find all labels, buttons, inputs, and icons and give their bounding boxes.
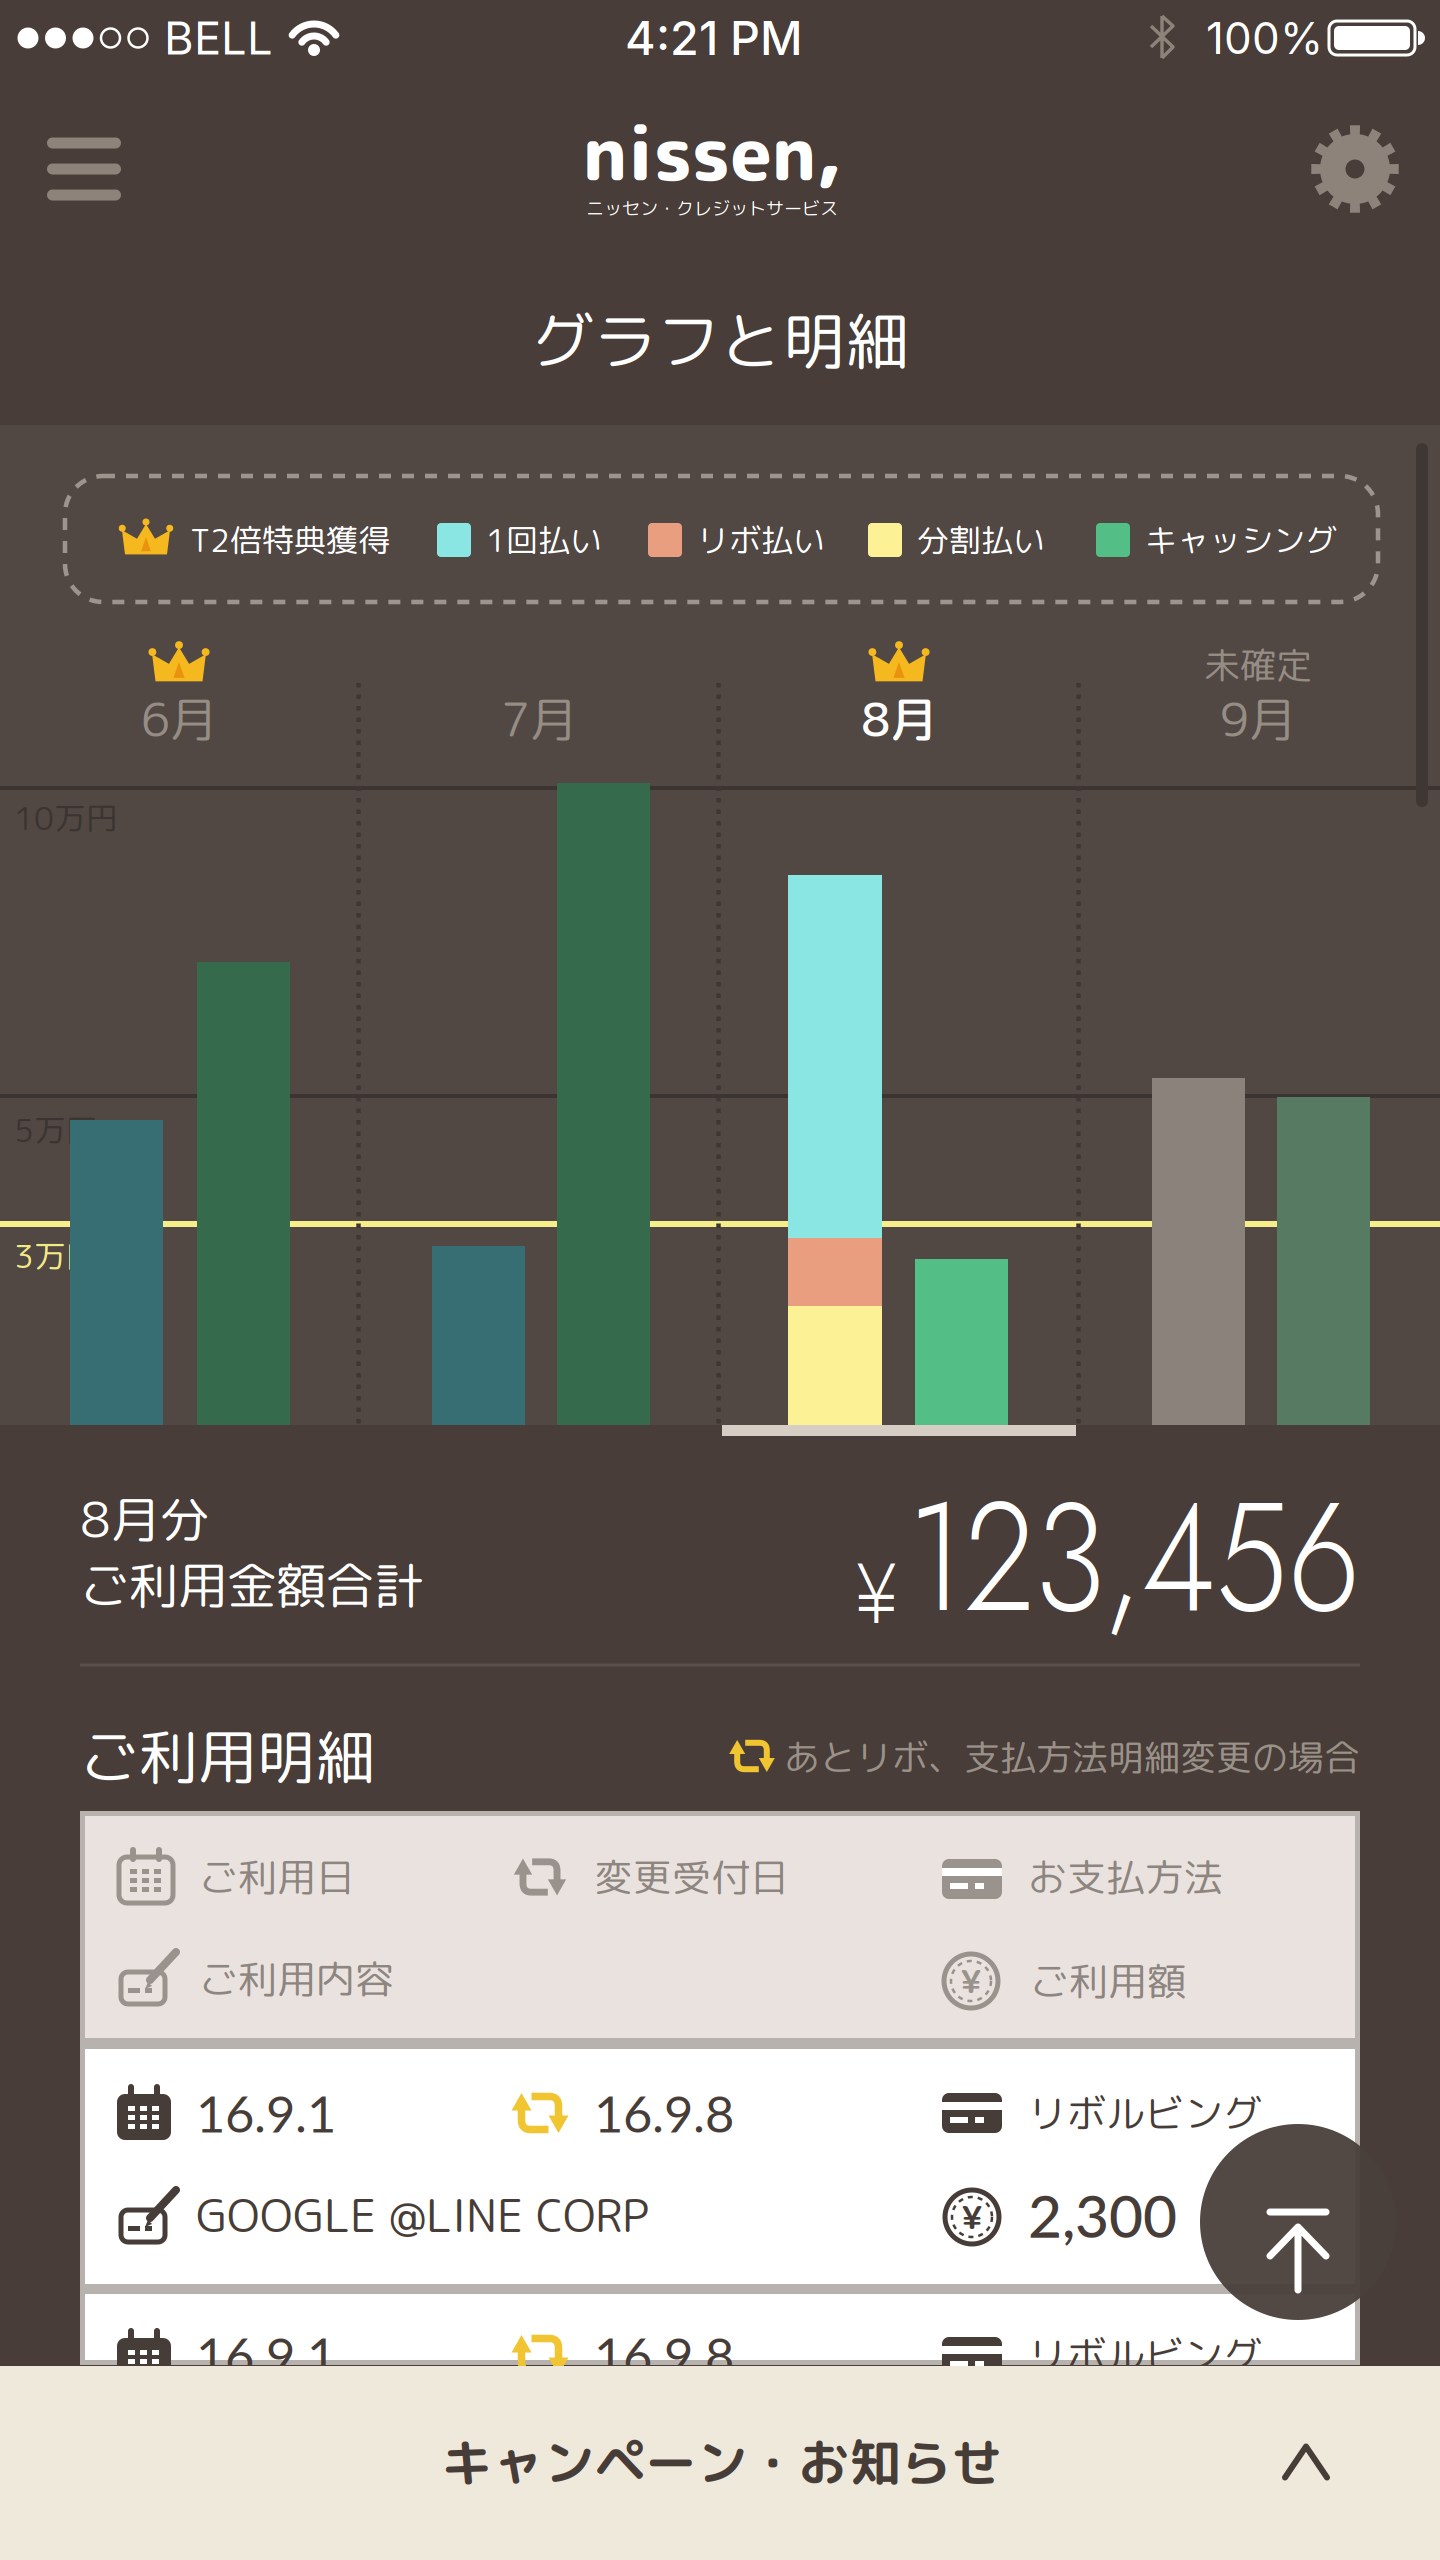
staticText: リボルビング [1028, 2328, 1262, 2382]
staticText: 分割払い [917, 518, 1045, 562]
staticText: キャッシング [1145, 518, 1337, 562]
staticText: キャンペーン・お知らせ [441, 2427, 1002, 2497]
staticText: 7月 [501, 686, 577, 751]
staticText: ご利用内容 [199, 1952, 394, 2006]
staticText: リボルビング [1028, 2086, 1262, 2140]
staticText: ¥ [960, 1959, 981, 2003]
staticText: リボ払い [697, 518, 825, 562]
staticText: 4:21 PM [625, 10, 803, 66]
staticText: ご利用額 [1030, 1954, 1186, 2008]
staticText: 1回払い [486, 518, 602, 562]
button[interactable]: キャンペーン・お知らせ [0, 2366, 1440, 2560]
staticText: ご利用明細 [80, 1715, 375, 1797]
staticText: ¥ [961, 2195, 982, 2239]
staticText: 6月 [141, 686, 217, 751]
staticText: ご利用日 [199, 1850, 355, 1904]
staticText: あとリボ、支払方法明細変更の場合 [784, 1732, 1360, 1782]
staticText: お支払方法 [1028, 1850, 1223, 1904]
staticText: 123,456 [828, 1447, 1360, 1667]
button[interactable]: Settings [1309, 123, 1401, 215]
button[interactable]: Menu [47, 137, 121, 200]
staticText: 16.9.1 [196, 2325, 336, 2385]
staticText: T2倍特典獲得 [190, 518, 390, 562]
button[interactable]: Scroll to top [1200, 2124, 1396, 2320]
staticText: 9月 [1220, 686, 1296, 751]
staticText: 10万円 [14, 796, 118, 840]
staticText: 100% [1206, 11, 1323, 65]
staticText: BELL [164, 11, 273, 65]
staticText: グラフと明細 [531, 296, 909, 384]
staticText: 5万円 [14, 1108, 98, 1152]
staticText: 3万円 [14, 1234, 98, 1278]
staticText: 変更受付日 [594, 1850, 789, 1904]
staticText: ご利用金額合計 [80, 1551, 423, 1619]
staticText: GOOGLE @LINE CORP [196, 2183, 649, 2247]
staticText: nissen, [582, 101, 841, 204]
staticText: 2,300 [1028, 2180, 1177, 2250]
staticText: 8月分 [80, 1485, 209, 1553]
staticText: ニッセン・クレジットサービス [586, 196, 838, 221]
staticText: 8月 [861, 686, 937, 751]
staticText: 16.9.8 [594, 2083, 734, 2143]
staticText: 16.9.1 [196, 2083, 336, 2143]
staticText: 未確定 [1204, 640, 1312, 690]
staticText: 16.9.8 [594, 2325, 734, 2385]
button[interactable]: nissen ニッセン・クレジットサービス [582, 101, 841, 229]
